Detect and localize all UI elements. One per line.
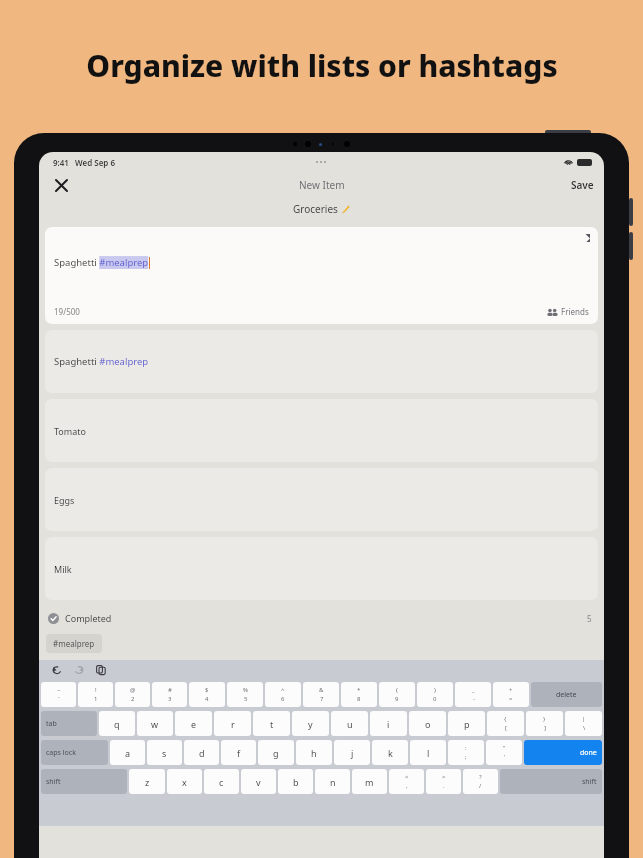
staticText: Organize with lists or hashtags bbox=[86, 45, 558, 86]
button[interactable]: l bbox=[410, 740, 446, 765]
button[interactable]: v bbox=[241, 769, 276, 794]
button[interactable]: x bbox=[167, 769, 202, 794]
button[interactable]: m bbox=[352, 769, 387, 794]
staticText: q bbox=[114, 718, 120, 730]
button[interactable]: f bbox=[221, 740, 256, 765]
staticText: ' bbox=[504, 753, 506, 761]
button[interactable]: u bbox=[331, 711, 368, 736]
button[interactable]: Paste bbox=[93, 662, 109, 678]
button[interactable]: > bbox=[426, 769, 461, 794]
button[interactable]: _ bbox=[455, 682, 491, 707]
button[interactable]: caps lock bbox=[41, 740, 108, 765]
staticText: 7 bbox=[320, 695, 324, 703]
button[interactable]: d bbox=[184, 740, 219, 765]
button[interactable]: q bbox=[99, 711, 135, 736]
button[interactable]: < bbox=[389, 769, 424, 794]
staticText: m bbox=[365, 776, 374, 788]
button[interactable]: t bbox=[253, 711, 290, 736]
button[interactable]: w bbox=[137, 711, 173, 736]
button[interactable]: Save bbox=[571, 178, 594, 192]
button[interactable]: r bbox=[214, 711, 251, 736]
button[interactable]: Redo bbox=[71, 662, 87, 678]
button[interactable]: i bbox=[370, 711, 407, 736]
button[interactable]: Close bbox=[49, 173, 73, 197]
button[interactable]: Undo bbox=[49, 662, 65, 678]
button[interactable]: ( bbox=[379, 682, 415, 707]
button[interactable]: b bbox=[278, 769, 313, 794]
button[interactable]: * bbox=[341, 682, 377, 707]
button[interactable]: | bbox=[565, 711, 602, 736]
button[interactable]: # bbox=[152, 682, 187, 707]
staticText: ` bbox=[58, 695, 60, 703]
staticText: / bbox=[479, 782, 482, 790]
staticText: d bbox=[199, 747, 205, 759]
button[interactable]: z bbox=[129, 769, 165, 794]
button[interactable]: Expand bbox=[45, 227, 598, 324]
button[interactable]: + bbox=[493, 682, 529, 707]
button[interactable]: ) bbox=[417, 682, 453, 707]
button[interactable]: ? bbox=[463, 769, 498, 794]
staticText: 4 bbox=[205, 695, 209, 703]
button[interactable]: o bbox=[409, 711, 446, 736]
button[interactable]: shift bbox=[500, 769, 602, 794]
button[interactable]: { bbox=[487, 711, 524, 736]
staticText: $ bbox=[205, 686, 209, 694]
button[interactable]: @ bbox=[115, 682, 150, 707]
staticText: 6 bbox=[281, 695, 285, 703]
button[interactable]: a bbox=[110, 740, 145, 765]
button[interactable]: Friends bbox=[547, 306, 589, 317]
staticText: 3 bbox=[168, 695, 172, 703]
staticText: + bbox=[509, 686, 513, 694]
staticText: [ bbox=[505, 724, 507, 732]
staticText: g bbox=[273, 747, 279, 759]
button[interactable]: } bbox=[526, 711, 563, 736]
staticText: ) bbox=[434, 686, 436, 694]
button[interactable]: h bbox=[296, 740, 332, 765]
staticText: delete bbox=[556, 690, 577, 700]
button[interactable]: e bbox=[175, 711, 212, 736]
staticText: - bbox=[473, 695, 475, 703]
button[interactable]: n bbox=[315, 769, 350, 794]
staticText: { bbox=[504, 715, 507, 723]
staticText: . bbox=[443, 782, 445, 790]
button[interactable]: s bbox=[147, 740, 182, 765]
button[interactable]: tab bbox=[41, 711, 97, 736]
button[interactable]: k bbox=[372, 740, 408, 765]
button[interactable]: g bbox=[258, 740, 294, 765]
button[interactable]: ! bbox=[78, 682, 113, 707]
button[interactable]: $ bbox=[189, 682, 225, 707]
button[interactable]: #mealprep bbox=[46, 634, 102, 653]
button[interactable]: : bbox=[448, 740, 484, 765]
staticText: ? bbox=[479, 773, 482, 781]
staticText: Completed bbox=[65, 612, 112, 624]
staticText: \ bbox=[583, 724, 586, 732]
staticText: 5 bbox=[587, 613, 592, 624]
staticText: * bbox=[357, 686, 361, 694]
button[interactable]: & bbox=[303, 682, 339, 707]
staticText: 19/500 bbox=[54, 306, 80, 317]
button[interactable]: " bbox=[486, 740, 522, 765]
staticText: c bbox=[219, 776, 224, 788]
button[interactable]: j bbox=[334, 740, 370, 765]
button[interactable]: p bbox=[448, 711, 485, 736]
staticText: caps lock bbox=[46, 748, 76, 758]
staticText: y bbox=[308, 718, 313, 730]
button[interactable]: % bbox=[227, 682, 263, 707]
button[interactable]: Spaghetti #mealprep bbox=[45, 330, 598, 393]
staticText: # bbox=[168, 686, 172, 694]
button[interactable]: ~ bbox=[41, 682, 76, 707]
staticText: h bbox=[311, 747, 317, 759]
staticText: ] bbox=[544, 724, 546, 732]
button[interactable]: y bbox=[292, 711, 329, 736]
button[interactable]: Eggs bbox=[45, 468, 598, 531]
button[interactable]: Tomato bbox=[45, 399, 598, 462]
button[interactable]: ^ bbox=[265, 682, 301, 707]
button[interactable]: c bbox=[204, 769, 239, 794]
button[interactable]: Milk bbox=[45, 537, 598, 600]
staticText: Tomato bbox=[54, 425, 86, 437]
button[interactable]: done bbox=[524, 740, 602, 765]
button[interactable]: shift bbox=[41, 769, 127, 794]
staticText: shift bbox=[46, 777, 61, 787]
button[interactable]: Completed bbox=[39, 606, 604, 630]
button[interactable]: delete bbox=[531, 682, 602, 707]
